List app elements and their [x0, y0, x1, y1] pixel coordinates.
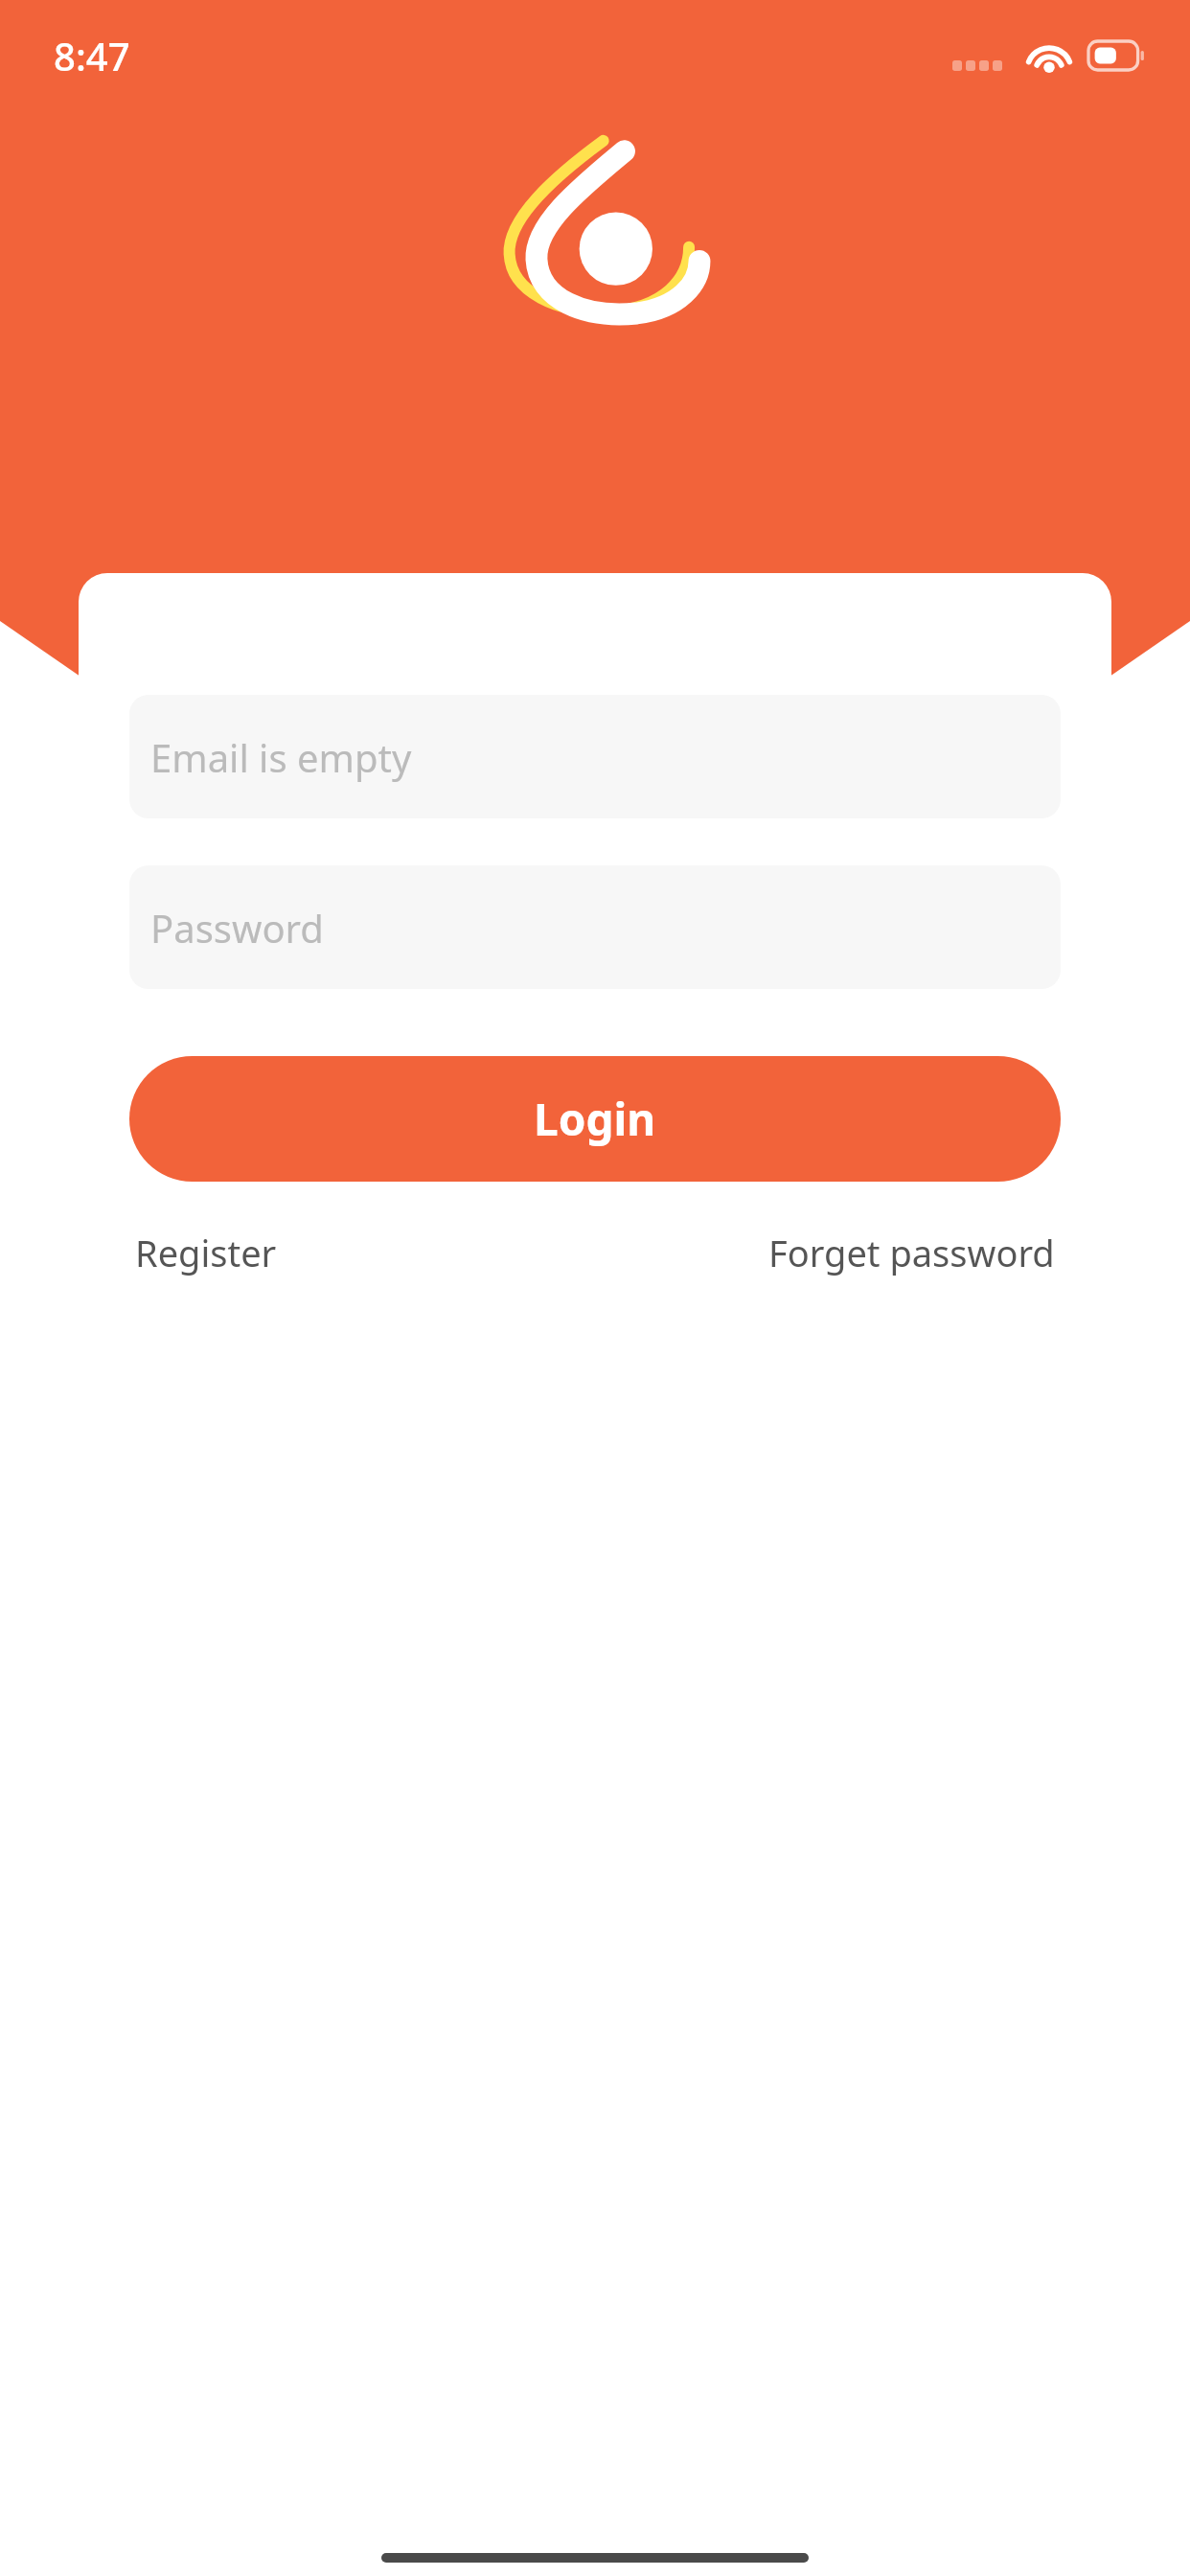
button[interactable]: Forget password [763, 1216, 1061, 1289]
staticText: Email is empty [150, 731, 412, 783]
staticText: Register [135, 1228, 277, 1277]
other: App logo [491, 139, 699, 313]
button[interactable]: Password [129, 865, 1061, 989]
staticText: Password [150, 902, 324, 954]
staticText: 8:47 [54, 30, 130, 81]
button[interactable]: Register [129, 1216, 283, 1289]
staticText: Login [534, 1089, 656, 1149]
staticText: Forget password [768, 1228, 1055, 1277]
button[interactable]: Login [129, 1056, 1061, 1182]
button[interactable]: Email is empty [129, 695, 1061, 818]
